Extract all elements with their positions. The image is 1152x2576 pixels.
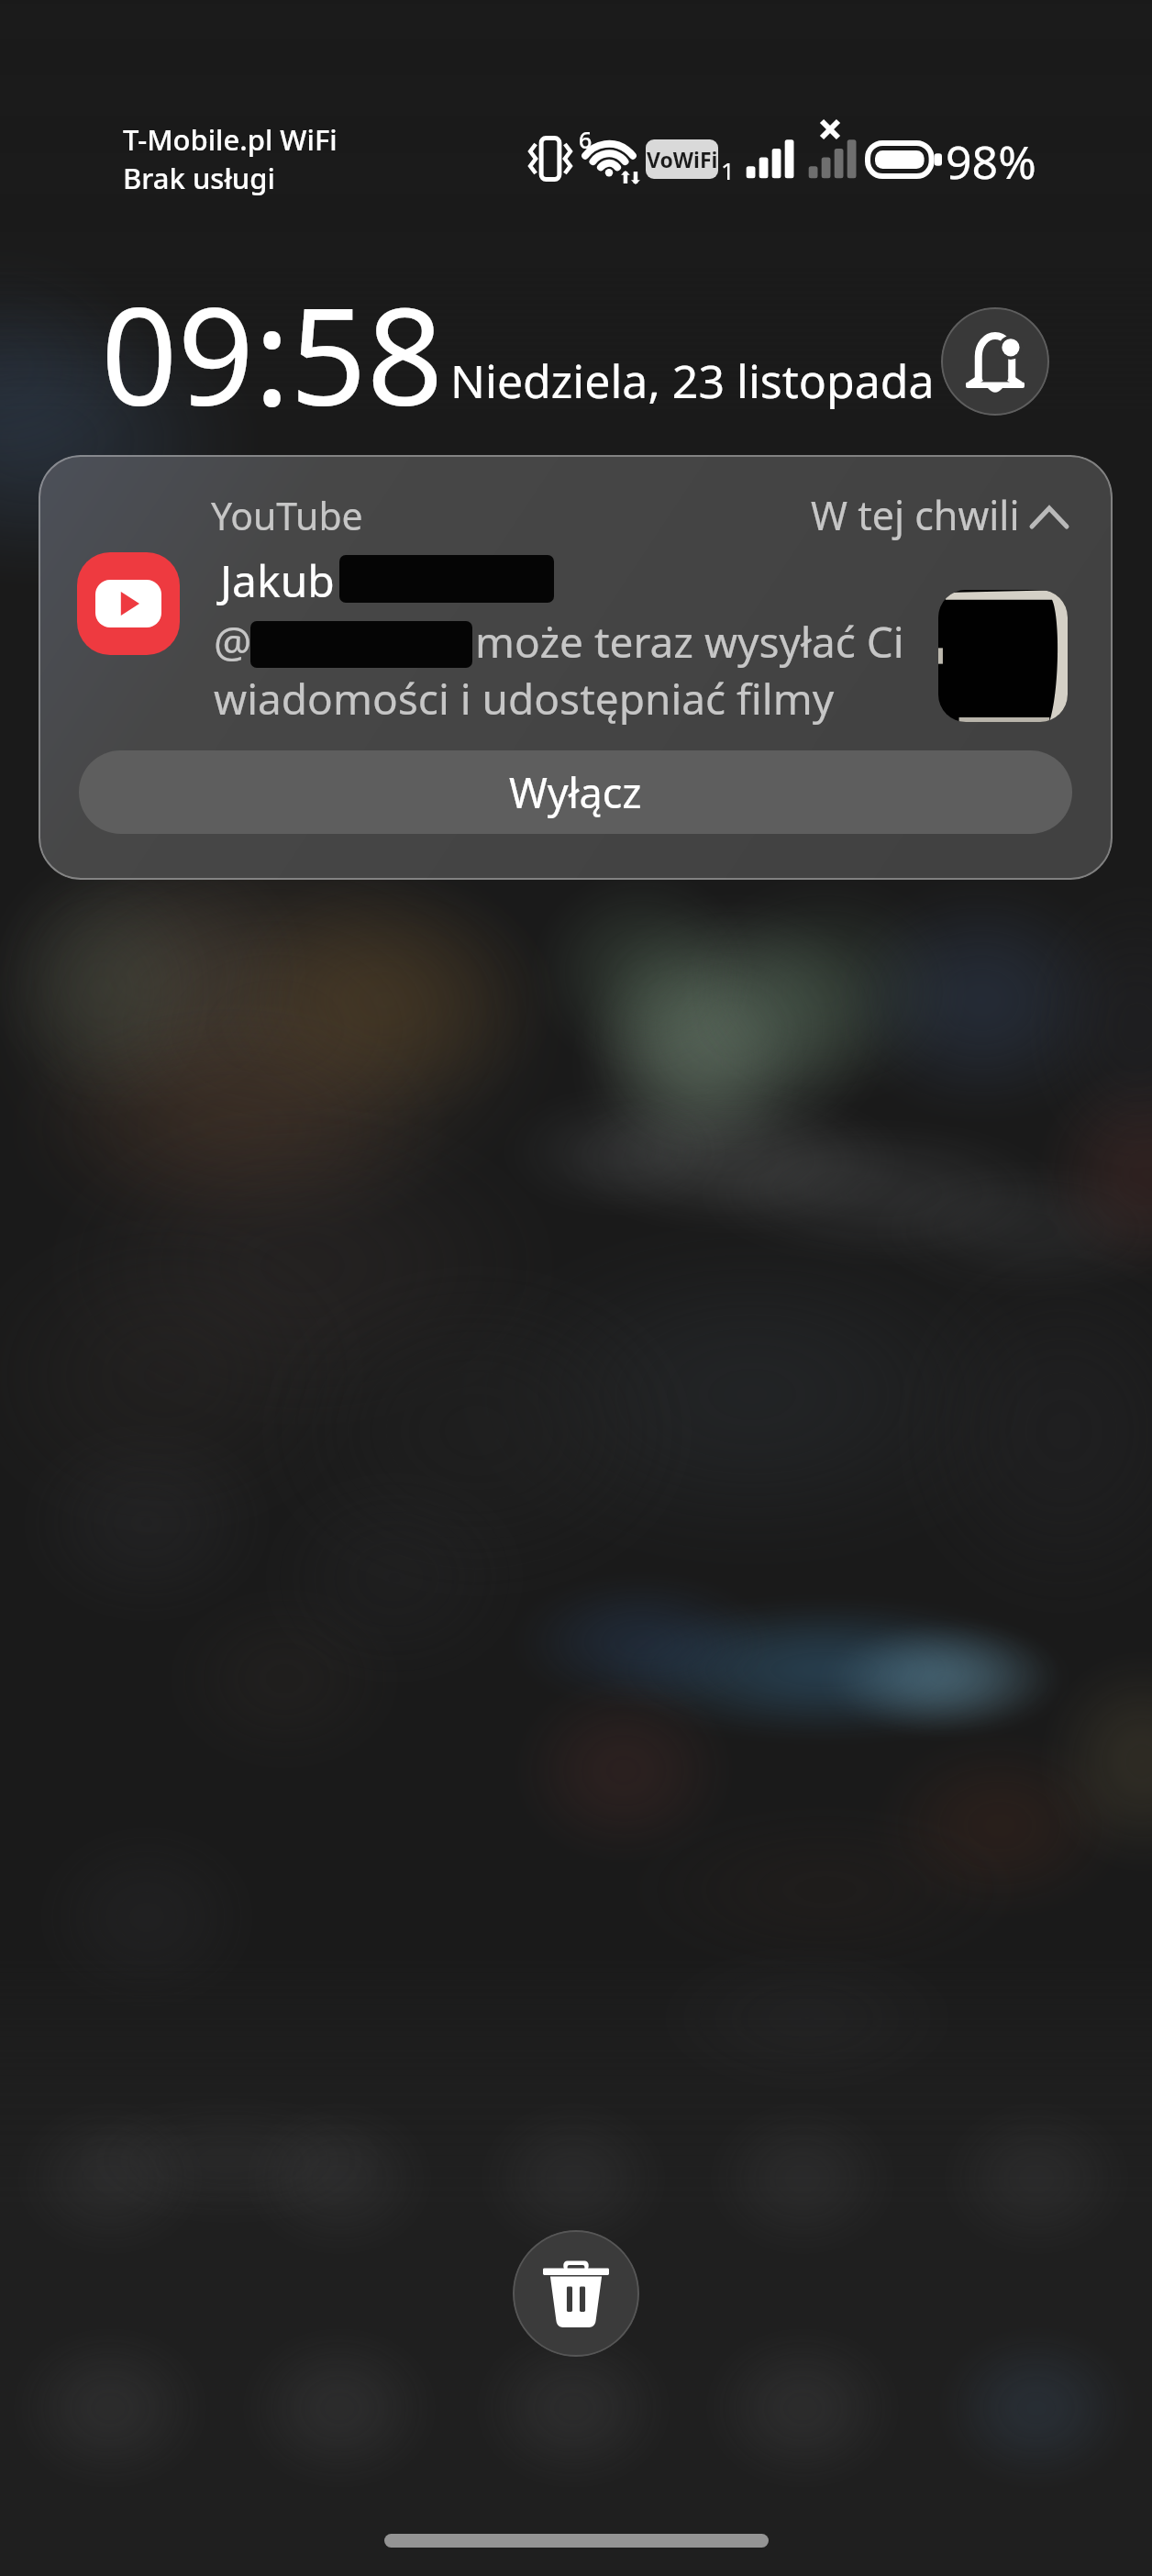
- staticText: W tej chwili: [811, 488, 1020, 542]
- button[interactable]: Wyłącz: [79, 750, 1072, 834]
- button[interactable]: Clear all notifications: [513, 2230, 639, 2357]
- staticText: 09:58: [101, 262, 444, 445]
- staticText: Wyłącz: [509, 764, 642, 820]
- staticText: 1: [721, 154, 735, 186]
- staticText: wiadomości i udostępniać filmy: [214, 670, 835, 727]
- staticText: 98%: [946, 130, 1036, 193]
- staticText: Brak usługi: [123, 159, 275, 197]
- button[interactable]: Notification settings: [941, 307, 1049, 416]
- staticText: może teraz wysyłać Ci: [475, 613, 904, 671]
- staticText: YouTube: [211, 490, 363, 541]
- staticText: 6: [579, 124, 593, 155]
- staticText: T-Mobile.pl WiFi: [123, 120, 338, 159]
- staticText: Niedziela, 23 listopada: [450, 350, 935, 412]
- staticText: VoWiFi: [647, 145, 718, 173]
- staticText: Jakub: [220, 550, 335, 610]
- button[interactable]: YouTube: [39, 455, 1113, 880]
- staticText: @: [214, 613, 252, 671]
